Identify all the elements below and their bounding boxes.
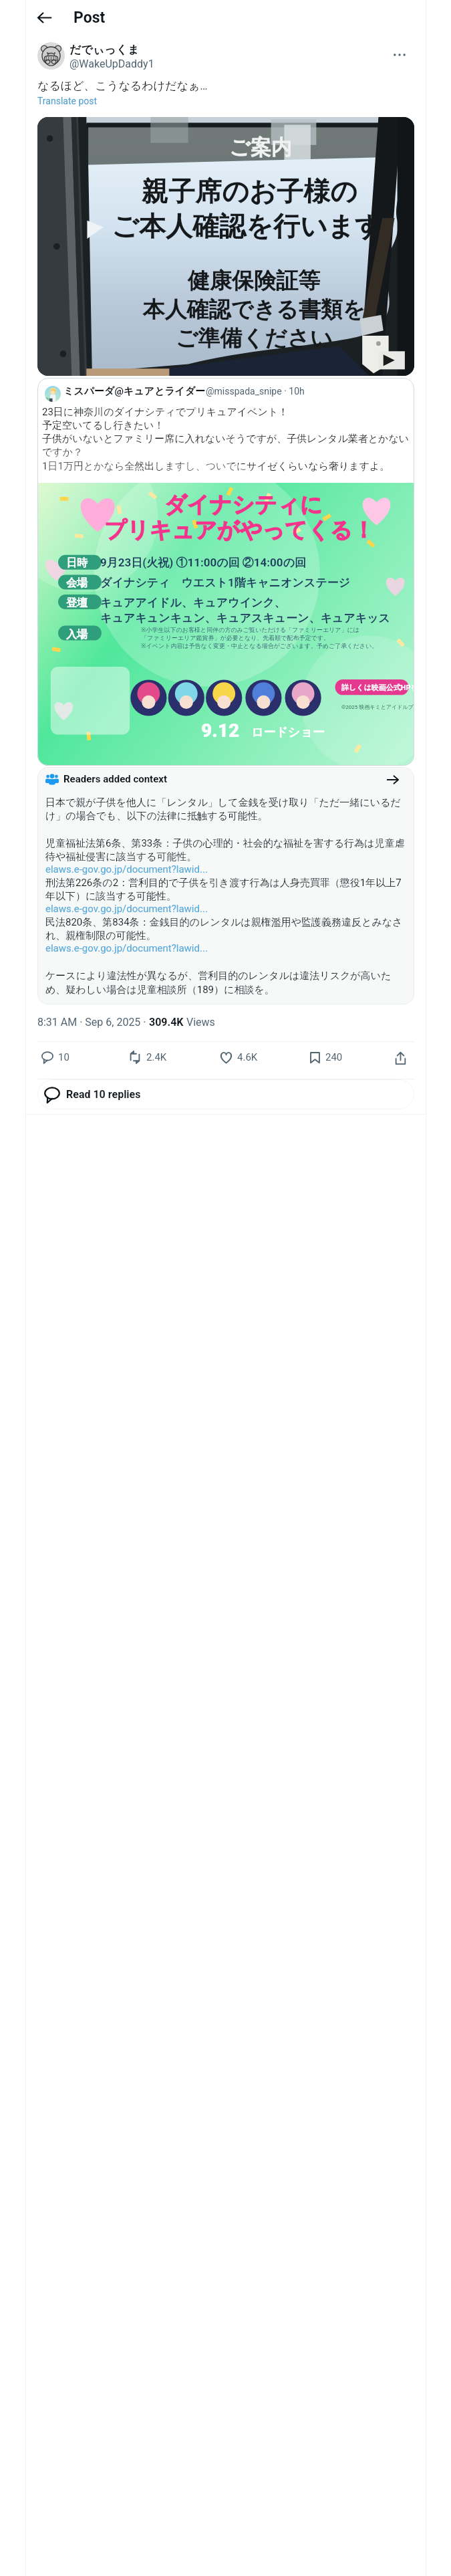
staticText: 民法820条、第834条：金銭目的のレンタルは親権濫用や監護義務違反とみなされ、… xyxy=(45,916,406,942)
staticText: 登壇 xyxy=(66,597,88,610)
button[interactable]: Share xyxy=(387,1045,414,1071)
staticText: なるほど、こうなるわけだなぁ… xyxy=(37,79,208,93)
staticText: ©2025 映画キミとアイドルプリキュア♪製作委員会 xyxy=(341,704,414,710)
staticText: 会場 xyxy=(66,576,88,590)
staticText: 2.4K xyxy=(146,1051,167,1063)
staticText: 4.6K xyxy=(237,1051,258,1063)
staticText: プリキュアがやってくる！ xyxy=(104,516,375,544)
staticText: 10 xyxy=(58,1051,69,1063)
button[interactable]: More xyxy=(388,43,412,67)
staticText: 詳しくは映画公式HPをチェック！ xyxy=(341,683,414,692)
staticText: 9月23日(火祝) ①11:00の回 ②14:00の回 xyxy=(100,556,307,570)
staticText: ミスパーダ@キュアとライダー xyxy=(63,385,206,398)
button[interactable]: Readers added context xyxy=(37,767,414,1004)
staticText: ご本人確認を行います xyxy=(112,209,412,243)
staticText: Read 10 replies xyxy=(66,1088,141,1101)
button[interactable]: Open context xyxy=(382,769,404,790)
staticText: Readers added context xyxy=(63,773,167,785)
staticText: 親子席のお子様の xyxy=(142,175,409,208)
button[interactable]: Photo of a notice sign xyxy=(37,117,414,376)
button[interactable]: Replies xyxy=(35,1045,76,1070)
staticText: Post xyxy=(73,9,106,27)
button[interactable]: elaws.e-gov.go.jp/document?lawid... xyxy=(45,903,208,915)
button[interactable]: Read 10 replies xyxy=(37,1079,414,1109)
button[interactable]: Back xyxy=(31,4,57,31)
staticText: ※小学生以下のお客様と同伴の方のみご覧いただける「ファミリーエリア」には 「ファ… xyxy=(141,625,378,650)
staticText: 入場 xyxy=(66,628,88,641)
staticText: ダイナシティ ウエスト1階キャニオンステージ xyxy=(100,576,350,590)
staticText: ロードショー xyxy=(251,725,325,740)
staticText: ケースにより違法性が異なるが、営利目的のレンタルは違法リスクが高いため、疑わしい… xyxy=(45,970,406,996)
staticText: @misspada_snipe · 10h xyxy=(206,386,305,397)
button[interactable]: Translate post xyxy=(37,96,98,106)
staticText: 日本で親が子供を他人に「レンタル」して金銭を受け取り「ただ一緒にいるだけ」の場合… xyxy=(45,796,406,822)
button[interactable]: Profile photo xyxy=(37,42,65,70)
staticText: @WakeUpDaddy1 xyxy=(69,58,154,70)
button[interactable]: Reposts xyxy=(122,1045,174,1070)
staticText: キュアアイドル、キュアウインク、 キュアキュンキュン、キュアスキューン、キュアキ… xyxy=(100,596,390,625)
staticText: 23日に神奈川のダイナシティでプリキュアイベント！ 予定空いてるし行きたい！ 子… xyxy=(42,406,410,472)
staticText: 9.12 xyxy=(201,720,240,742)
staticText: 309.4K xyxy=(149,1016,184,1029)
staticText: 240 xyxy=(325,1051,343,1063)
button[interactable]: ミスパーダ@キュアとライダー xyxy=(37,378,414,766)
staticText: 健康保険証等 本人確認できる書類を ご準備ください xyxy=(138,267,369,352)
staticText: 8:31 AM · Sep 6, 2025 · xyxy=(37,1016,149,1029)
button[interactable]: Bookmarks xyxy=(303,1045,349,1070)
staticText: だでぃっくま xyxy=(69,43,140,57)
staticText: 日時 xyxy=(66,556,88,570)
staticText: Views xyxy=(184,1016,215,1029)
staticText: ご案内 xyxy=(229,134,292,160)
button[interactable]: elaws.e-gov.go.jp/document?lawid... xyxy=(45,942,208,954)
staticText: 刑法第226条の2：営利目的で子供を引き渡す行為は人身売買罪（懲役1年以上7年以… xyxy=(45,877,406,902)
staticText: 児童福祉法第6条、第33条：子供の心理的・社会的な福祉を害する行為は児童虐待や福… xyxy=(45,837,406,863)
staticText: ダイナシティに xyxy=(164,491,323,519)
button[interactable]: Likes xyxy=(213,1045,265,1070)
button[interactable]: elaws.e-gov.go.jp/document?lawid... xyxy=(45,863,208,875)
